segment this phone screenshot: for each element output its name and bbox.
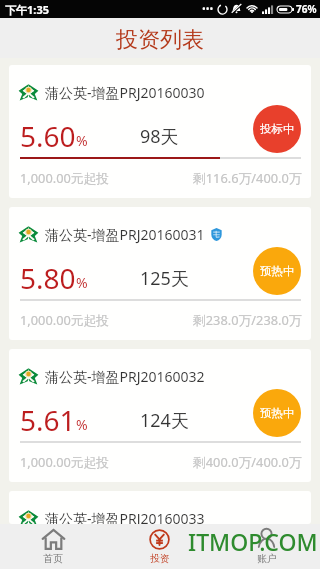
button[interactable]: 首页 <box>0 524 106 569</box>
staticText: 1,000.00元起投 <box>20 169 110 186</box>
staticText: 预热中 <box>260 406 295 420</box>
button[interactable]: 预热中 <box>253 389 301 437</box>
staticText: 1,000.00元起投 <box>20 453 110 470</box>
staticText: 下午1:35 <box>5 2 49 17</box>
staticText: 蒲公英-增盈PRJ20160032 <box>45 367 205 386</box>
button[interactable]: 账户 <box>213 524 320 569</box>
button[interactable]: 蒲公英-增盈PRJ20160032 <box>9 349 311 482</box>
staticText: 账户 <box>257 552 277 565</box>
staticText: 1,000.00元起投 <box>20 311 110 328</box>
staticText: % <box>76 131 88 150</box>
staticText: 124天 <box>140 408 189 433</box>
staticText: 投标中 <box>260 122 295 136</box>
staticText: 98天 <box>140 124 179 149</box>
other: 首页 <box>42 529 65 550</box>
staticText: 预热中 <box>260 264 295 278</box>
button[interactable]: 投标中 <box>253 105 301 153</box>
staticText: 5.60 <box>20 117 76 155</box>
button[interactable]: 投资 <box>106 524 213 569</box>
staticText: 剩116.6万/400.0万 <box>193 169 302 186</box>
staticText: 剩400.0万/400.0万 <box>193 453 302 470</box>
staticText: 蒲公英-增盈PRJ20160033 <box>45 509 205 524</box>
staticText: ITMOP.COM <box>188 526 318 557</box>
staticText: ••• <box>202 2 214 16</box>
button[interactable]: 蒲公英-增盈PRJ20160033 <box>9 491 311 524</box>
staticText: 投资 <box>150 552 170 565</box>
staticText: 5.61 <box>20 401 76 439</box>
staticText: % <box>76 415 88 434</box>
staticText: 首页 <box>43 552 63 565</box>
staticText: 125天 <box>140 266 189 291</box>
staticText: 76% <box>296 2 317 16</box>
staticText: 投资列表 <box>116 26 204 54</box>
other: 投资 <box>149 529 170 550</box>
staticText: % <box>76 273 88 292</box>
staticText: 剩238.0万/238.0万 <box>193 311 302 328</box>
button[interactable]: 蒲公英-增盈PRJ20160030 <box>9 65 311 198</box>
staticText: 蒲公英-增盈PRJ20160030 <box>45 83 205 102</box>
other: 账户 <box>258 529 275 550</box>
button[interactable]: 蒲公英-增盈PRJ20160031 <box>9 207 311 340</box>
button[interactable]: 预热中 <box>253 247 301 295</box>
staticText: 5.80 <box>20 259 76 297</box>
staticText: 蒲公英-增盈PRJ20160031 <box>45 225 205 244</box>
